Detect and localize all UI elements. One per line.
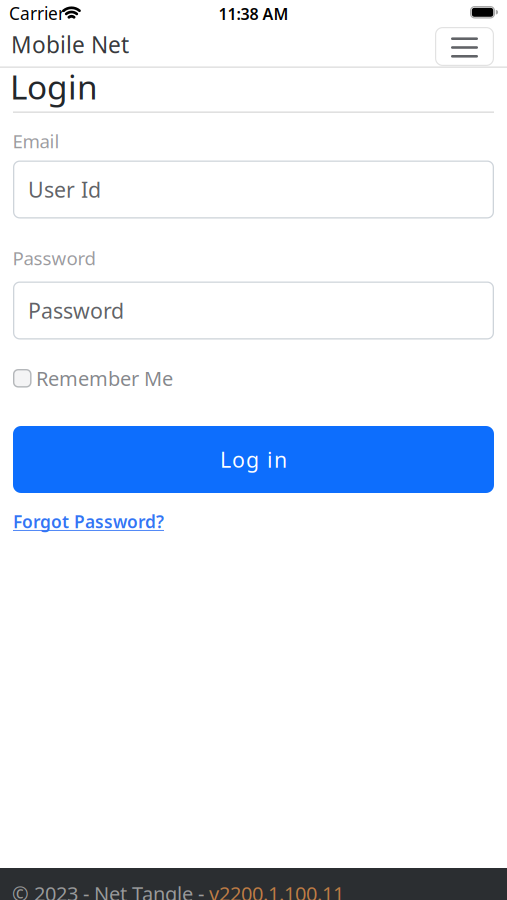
staticText: Login: [10, 64, 98, 109]
staticText: Remember Me: [36, 365, 173, 392]
staticText: Log in: [220, 445, 287, 474]
staticText: 11:38 AM: [218, 3, 288, 24]
button[interactable]: Log in: [13, 426, 494, 493]
staticText: Password: [28, 296, 124, 325]
staticText: © 2023 - Net Tangle -: [12, 880, 209, 900]
button[interactable]: Menu: [435, 27, 494, 66]
staticText: Email: [12, 128, 59, 153]
button[interactable]: Forgot Password?: [13, 510, 164, 533]
staticText: Forgot Password?: [13, 510, 164, 533]
staticText: v2200.1.100.11: [209, 880, 344, 900]
staticText: Carrier: [9, 2, 65, 25]
staticText: Mobile Net: [11, 29, 129, 60]
staticText: Password: [12, 245, 95, 270]
button[interactable]: Remember Me: [13, 365, 173, 392]
staticText: User Id: [28, 175, 101, 204]
